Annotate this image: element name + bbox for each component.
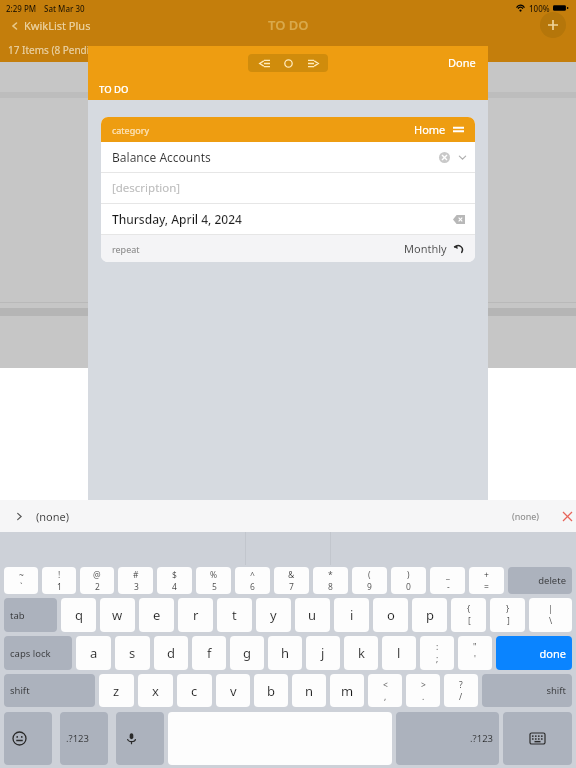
staticText: % xyxy=(210,569,218,581)
button[interactable]: caps lock xyxy=(4,636,72,670)
button[interactable]: i xyxy=(334,598,369,632)
button[interactable]: p xyxy=(412,598,447,632)
button[interactable]: g xyxy=(230,636,264,670)
button[interactable]: : xyxy=(420,636,454,670)
button[interactable]: * xyxy=(313,567,348,594)
button[interactable]: & xyxy=(274,567,309,594)
button[interactable]: @ xyxy=(80,567,114,594)
staticText: 8 xyxy=(328,581,333,593)
staticText: v xyxy=(230,682,237,700)
button[interactable]: ^ xyxy=(235,567,270,594)
button[interactable]: } xyxy=(490,598,525,632)
staticText: category xyxy=(112,124,149,136)
staticText: ` xyxy=(20,581,23,593)
button[interactable]: ) xyxy=(391,567,426,594)
button[interactable]: Balance Accounts xyxy=(101,142,475,172)
button[interactable]: y xyxy=(256,598,291,632)
button[interactable]: h xyxy=(268,636,302,670)
staticText: a xyxy=(90,644,98,662)
button[interactable]: n xyxy=(292,674,326,707)
staticText: j xyxy=(321,644,325,662)
button[interactable]: Dictation xyxy=(116,712,164,765)
button[interactable]: b xyxy=(254,674,288,707)
staticText: Done xyxy=(448,55,476,70)
button[interactable]: # xyxy=(118,567,153,594)
button[interactable]: .?123 xyxy=(396,712,499,765)
button[interactable]: s xyxy=(115,636,150,670)
button[interactable]: " xyxy=(458,636,492,670)
button[interactable]: Close xyxy=(558,507,576,525)
staticText: - xyxy=(447,581,450,593)
staticText: { xyxy=(467,603,471,615)
button[interactable]: Thursday, April 4, 2024 xyxy=(101,204,475,234)
button[interactable]: Emoji xyxy=(4,712,52,765)
button[interactable]: z xyxy=(99,674,134,707)
button[interactable]: u xyxy=(295,598,330,632)
button[interactable]: [description] xyxy=(101,173,475,203)
button[interactable]: < xyxy=(368,674,402,707)
staticText: Home xyxy=(414,122,446,137)
button[interactable]: _ xyxy=(430,567,465,594)
staticText: ! xyxy=(58,569,61,581)
staticText: s xyxy=(129,644,136,662)
button[interactable]: ( xyxy=(352,567,387,594)
button[interactable]: t xyxy=(217,598,252,632)
button[interactable]: % xyxy=(196,567,231,594)
staticText: * xyxy=(328,569,333,581)
button[interactable]: l xyxy=(382,636,416,670)
button[interactable]: ? xyxy=(444,674,478,707)
button[interactable]: ! xyxy=(42,567,76,594)
staticText: _ xyxy=(446,569,450,581)
staticText: f xyxy=(207,644,212,662)
staticText: repeat xyxy=(112,243,140,255)
button[interactable]: ~ xyxy=(4,567,38,594)
button[interactable]: d xyxy=(154,636,188,670)
button[interactable]: o xyxy=(373,598,408,632)
button[interactable]: a xyxy=(76,636,111,670)
button[interactable]: Add item xyxy=(540,12,566,38)
button[interactable]: | xyxy=(529,598,572,632)
button[interactable]: j xyxy=(306,636,340,670)
button[interactable]: Bullet xyxy=(279,54,297,72)
button[interactable]: c xyxy=(177,674,212,707)
button[interactable]: delete xyxy=(508,567,572,594)
staticText: (none) xyxy=(512,510,540,522)
button[interactable]: m xyxy=(330,674,364,707)
button[interactable]: > xyxy=(406,674,440,707)
button[interactable]: Indent left xyxy=(255,54,273,72)
staticText: 5 xyxy=(212,581,217,593)
button[interactable]: Done xyxy=(448,55,476,70)
button[interactable]: + xyxy=(469,567,504,594)
button[interactable]: repeat xyxy=(101,235,475,262)
staticText: & xyxy=(288,569,295,581)
button[interactable]: $ xyxy=(157,567,192,594)
button[interactable]: f xyxy=(192,636,226,670)
button[interactable]: k xyxy=(344,636,378,670)
button[interactable]: tab xyxy=(4,598,57,632)
button[interactable]: shift xyxy=(482,674,572,707)
staticText: l xyxy=(397,644,401,662)
staticText: (none) xyxy=(36,509,70,524)
staticText: Balance Accounts xyxy=(112,149,211,165)
button[interactable]: e xyxy=(139,598,174,632)
button[interactable]: .?123 xyxy=(60,712,108,765)
staticText: Sat Mar 30 xyxy=(44,3,85,14)
button[interactable]: { xyxy=(451,598,486,632)
staticText: @ xyxy=(93,569,101,581)
button[interactable]: shift xyxy=(4,674,95,707)
staticText: 6 xyxy=(250,581,255,593)
button[interactable]: q xyxy=(61,598,96,632)
button[interactable]: Hide keyboard xyxy=(503,712,572,765)
button[interactable]: w xyxy=(100,598,135,632)
staticText: d xyxy=(167,644,175,662)
button[interactable]: v xyxy=(216,674,250,707)
staticText: ( xyxy=(368,569,371,581)
button[interactable]: x xyxy=(138,674,173,707)
staticText: ' xyxy=(474,653,476,665)
button[interactable]: Expand xyxy=(12,509,26,523)
button[interactable]: Indent right xyxy=(304,54,322,72)
button[interactable]: done xyxy=(496,636,572,670)
button[interactable]: r xyxy=(178,598,213,632)
button[interactable]: category xyxy=(101,117,475,142)
